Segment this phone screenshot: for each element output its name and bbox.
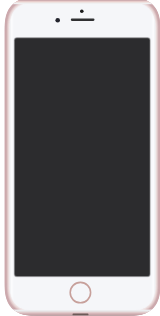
other: Rose gold phone mockup (0, 0, 160, 316)
